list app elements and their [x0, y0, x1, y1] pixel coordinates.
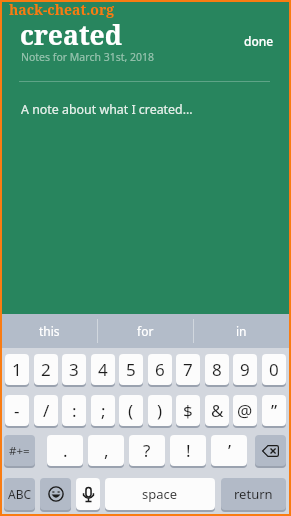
button[interactable]: . [47, 435, 83, 466]
button[interactable]: ’ [211, 435, 247, 466]
staticText: Notes for March 31st, 2018 [21, 50, 155, 64]
button[interactable]: this [2, 314, 97, 348]
button[interactable]: : [62, 395, 86, 426]
staticText: hack-cheat.org [9, 0, 115, 19]
staticText: ( [128, 399, 134, 422]
staticText: space [142, 485, 178, 503]
staticText: 1 [12, 358, 22, 381]
staticText: - [14, 399, 20, 422]
button[interactable]: ” [262, 395, 286, 426]
button[interactable]: #+= [4, 435, 35, 466]
staticText: . [63, 439, 68, 462]
staticText: ) [157, 399, 163, 422]
staticText: ; [101, 399, 106, 422]
staticText: 9 [240, 358, 250, 381]
button[interactable]: 6 [148, 354, 172, 385]
button[interactable]: ( [119, 395, 143, 426]
button[interactable]: ABC [4, 478, 35, 510]
staticText: ’ [228, 439, 231, 462]
button[interactable]: in [194, 314, 289, 348]
staticText: 2 [41, 358, 51, 381]
button[interactable]: / [34, 395, 58, 426]
staticText: ? [143, 439, 151, 462]
button[interactable]: space [105, 478, 215, 510]
button[interactable]: Emoji [40, 478, 71, 510]
button[interactable]: 3 [62, 354, 86, 385]
staticText: 0 [269, 358, 279, 381]
button[interactable]: 1 [5, 354, 29, 385]
staticText: ! [186, 439, 191, 462]
staticText: in [236, 323, 247, 339]
staticText: done [244, 33, 274, 49]
staticText: return [234, 485, 273, 503]
staticText: , [104, 439, 109, 462]
button[interactable]: & [205, 395, 229, 426]
button[interactable]: $ [176, 395, 200, 426]
staticText: 4 [98, 358, 108, 381]
button[interactable]: 4 [91, 354, 115, 385]
staticText: 8 [212, 358, 222, 381]
button[interactable]: Backspace [255, 435, 286, 466]
button[interactable]: for [98, 314, 193, 348]
button[interactable]: return [221, 478, 286, 510]
staticText: #+= [9, 443, 30, 459]
button[interactable]: 5 [119, 354, 143, 385]
staticText: 6 [155, 358, 165, 381]
staticText: $ [183, 399, 193, 422]
staticText: @ [237, 399, 253, 422]
staticText: for [137, 323, 154, 339]
staticText: : [72, 399, 77, 422]
button[interactable]: 8 [205, 354, 229, 385]
staticText: & [211, 399, 224, 422]
staticText: ” [271, 399, 278, 422]
button[interactable]: @ [233, 395, 257, 426]
button[interactable]: - [5, 395, 29, 426]
button[interactable]: 9 [233, 354, 257, 385]
button[interactable]: ? [129, 435, 165, 466]
button[interactable]: ! [170, 435, 206, 466]
staticText: 7 [183, 358, 193, 381]
button[interactable]: Voice input [76, 478, 100, 510]
staticText: created [20, 17, 122, 53]
staticText: / [43, 399, 50, 422]
button[interactable]: 0 [262, 354, 286, 385]
button[interactable]: 2 [34, 354, 58, 385]
button[interactable]: 7 [176, 354, 200, 385]
staticText: this [39, 323, 60, 339]
button[interactable]: done [238, 28, 280, 54]
staticText: ABC [8, 486, 32, 502]
button[interactable]: ) [148, 395, 172, 426]
button[interactable]: ; [91, 395, 115, 426]
staticText: A note about what I created... [21, 101, 193, 118]
button[interactable]: , [88, 435, 124, 466]
staticText: 5 [126, 358, 136, 381]
staticText: 3 [69, 358, 79, 381]
